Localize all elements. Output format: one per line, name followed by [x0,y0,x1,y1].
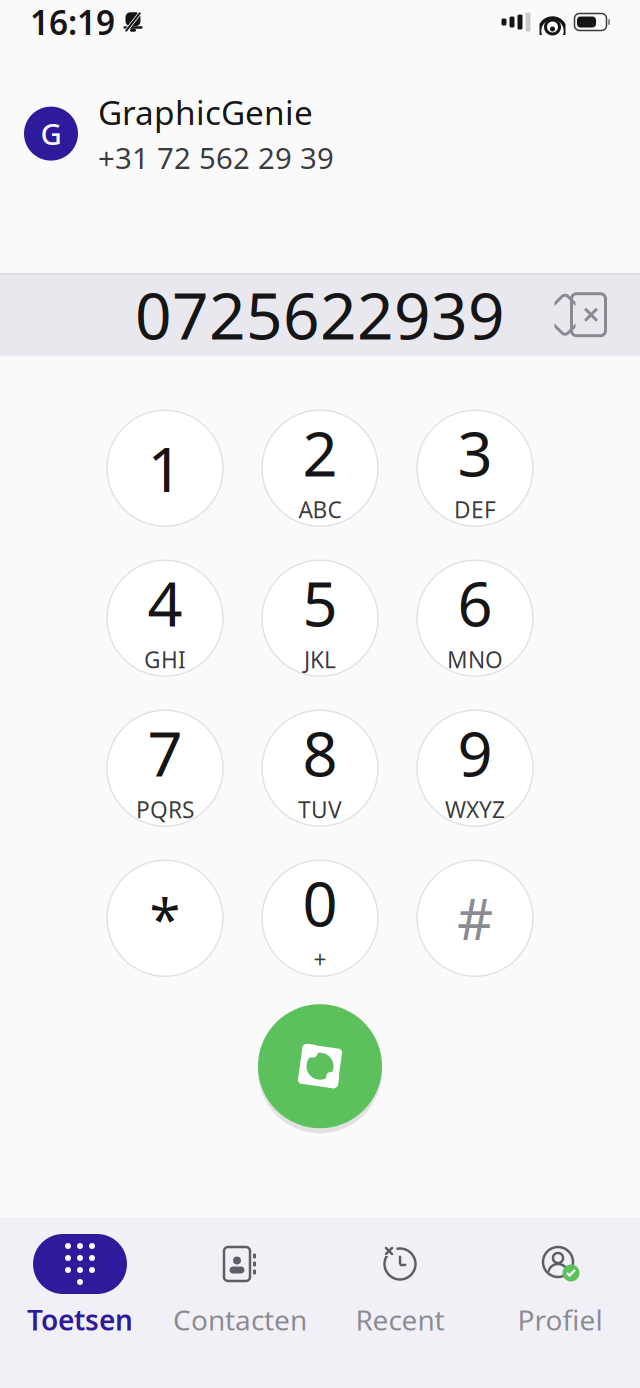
button[interactable]: 4 [107,560,223,676]
staticText: DEF [454,494,496,524]
staticText: * [149,881,180,955]
staticText: Toetsen [27,1301,133,1338]
staticText: 7 [147,712,182,793]
staticText: 3 [457,412,492,493]
button[interactable]: * [107,860,223,976]
button[interactable]: 0 [262,860,378,976]
staticText: # [457,881,493,955]
staticText: ABC [298,494,341,524]
staticText: Recent [355,1301,444,1338]
button[interactable]: Toetsen [0,1224,160,1352]
staticText: 16:19 [30,0,115,44]
staticText: PQRS [136,794,194,824]
button[interactable]: 6 [417,560,533,676]
button[interactable]: 5 [262,560,378,676]
staticText: Profiel [517,1301,602,1338]
staticText: Contacten [173,1301,307,1338]
staticText: 0725622939 [135,272,505,357]
staticText: 2 [302,412,337,493]
staticText: TUV [298,794,342,824]
staticText: MNO [447,644,503,674]
button[interactable]: 2 [262,410,378,526]
staticText: GHI [144,644,186,674]
button[interactable]: 9 [417,710,533,826]
staticText: 4 [147,562,182,643]
button[interactable]: # [417,860,533,976]
staticText: JKL [304,644,336,674]
staticText: 1 [147,427,182,509]
staticText: + [313,944,326,974]
button[interactable]: Backspace [538,275,626,355]
staticText: 8 [302,712,337,793]
staticText: WXYZ [445,794,505,824]
button[interactable]: 7 [107,710,223,826]
staticText: G [40,114,61,153]
button[interactable]: Recent [320,1224,480,1352]
button[interactable]: 8 [262,710,378,826]
staticText: 6 [457,562,492,643]
button[interactable]: Contacten [160,1224,320,1352]
button[interactable]: 1 [107,410,223,526]
staticText: 0 [302,862,337,943]
staticText: 5 [302,562,337,643]
staticText: 9 [457,712,492,793]
button[interactable]: Profiel [480,1224,640,1352]
staticText: +31 72 562 29 39 [98,138,334,177]
button[interactable]: Call [252,998,388,1134]
staticText: GraphicGenie [98,90,313,134]
button[interactable]: 3 [417,410,533,526]
